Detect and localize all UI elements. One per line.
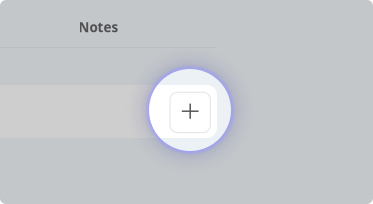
staticText: Notes <box>78 18 118 36</box>
button[interactable]: New note <box>0 0 373 204</box>
